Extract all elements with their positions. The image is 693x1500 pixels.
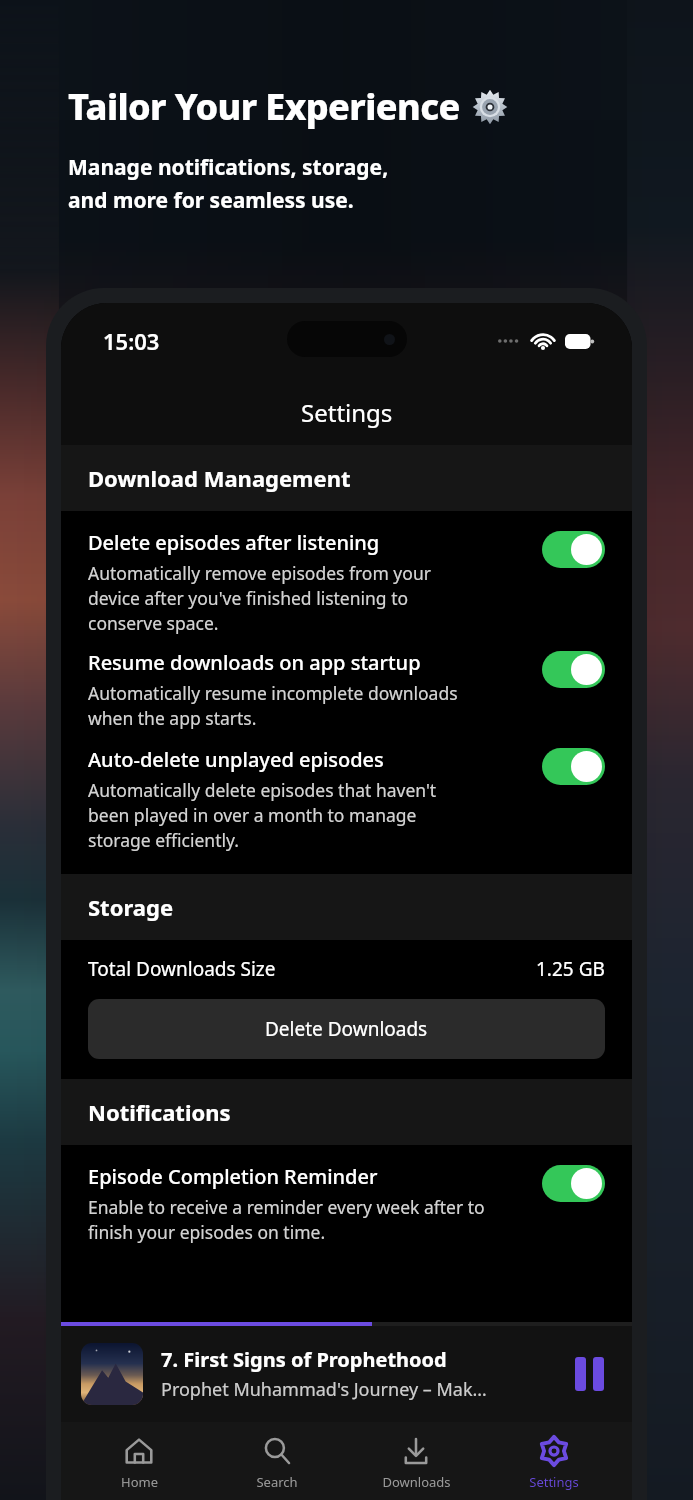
staticText: Delete episodes after listening — [88, 529, 380, 556]
button[interactable]: Search — [217, 1422, 337, 1500]
button[interactable]: Auto-delete unplayed episodes — [61, 746, 632, 852]
button[interactable]: Episode Completion Reminder — [61, 1163, 632, 1244]
staticText: Home — [121, 1473, 158, 1491]
staticText: Automatically resume incomplete download… — [88, 681, 458, 730]
button[interactable]: Toggle on — [542, 651, 605, 688]
staticText: Delete Downloads — [265, 1016, 428, 1042]
button[interactable]: Delete episodes after listening — [61, 529, 632, 635]
staticText: Settings — [301, 396, 393, 429]
button[interactable]: Toggle on — [542, 1165, 605, 1202]
button[interactable]: Resume downloads on app startup — [61, 649, 632, 730]
staticText: 1.25 GB — [536, 956, 605, 982]
staticText: Manage notifications, storage, — [68, 153, 389, 182]
staticText: 7. First Signs of Prophethood — [161, 1346, 447, 1373]
staticText: Tailor Your Experience — [68, 82, 460, 131]
button[interactable]: Settings — [494, 1422, 614, 1500]
button[interactable]: Delete Downloads — [88, 999, 605, 1059]
staticText: Search — [256, 1473, 298, 1491]
staticText: Automatically remove episodes from your … — [88, 561, 431, 635]
staticText: Resume downloads on app startup — [88, 649, 421, 676]
staticText: Storage — [88, 892, 174, 922]
button[interactable]: 7. First Signs of Prophethood — [61, 1326, 632, 1422]
staticText: Enable to receive a reminder every week … — [88, 1195, 485, 1244]
staticText: Notifications — [88, 1097, 231, 1127]
staticText: 15:03 — [103, 326, 160, 356]
button[interactable]: Toggle on — [542, 748, 605, 785]
button[interactable]: Pause — [566, 1351, 612, 1397]
staticText: Downloads — [382, 1473, 451, 1491]
staticText: Episode Completion Reminder — [88, 1163, 378, 1190]
staticText: Total Downloads Size — [88, 956, 276, 982]
staticText: Download Management — [88, 463, 351, 493]
button[interactable]: Home — [79, 1422, 199, 1500]
staticText: Settings — [529, 1473, 579, 1491]
staticText: Auto-delete unplayed episodes — [88, 746, 384, 773]
button[interactable]: Toggle on — [542, 531, 605, 568]
button[interactable]: Downloads — [356, 1422, 476, 1500]
staticText: and more for seamless use. — [68, 186, 354, 215]
staticText: Automatically delete episodes that haven… — [88, 778, 437, 852]
staticText: Prophet Muhammad's Journey – Mak… — [161, 1377, 487, 1402]
